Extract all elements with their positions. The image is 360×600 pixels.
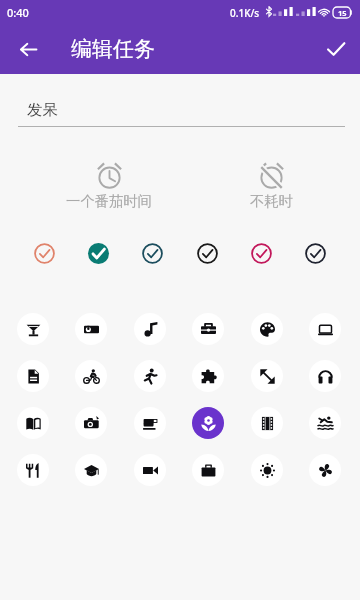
button[interactable]: Colour 5 [245, 237, 277, 269]
button[interactable]: Colour 2 [82, 237, 114, 269]
button[interactable]: swim [309, 407, 341, 439]
button[interactable]: Colour 4 [191, 237, 223, 269]
button[interactable]: Colour 6 [299, 237, 331, 269]
staticText: 0.1K/s [230, 6, 260, 20]
button[interactable]: music [134, 313, 166, 345]
button[interactable]: Colour 3 [136, 237, 168, 269]
button[interactable]: fan [309, 454, 341, 486]
button[interactable]: school [75, 454, 107, 486]
button[interactable]: sun [251, 454, 283, 486]
button[interactable]: laptop [309, 313, 341, 345]
button[interactable]: camera [75, 407, 107, 439]
button[interactable]: coffee [134, 407, 166, 439]
button[interactable]: Back [11, 32, 45, 66]
button[interactable]: puzzle [192, 360, 224, 392]
button[interactable]: headphones [309, 360, 341, 392]
button[interactable]: cocktail [17, 313, 49, 345]
button[interactable]: Save [319, 32, 353, 66]
button[interactable]: bag [192, 454, 224, 486]
staticText: 不耗时 [250, 192, 293, 210]
staticText: 一个番茄时间 [66, 192, 152, 210]
button[interactable]: money [75, 313, 107, 345]
button[interactable]: video [134, 454, 166, 486]
button[interactable]: film [251, 407, 283, 439]
button[interactable]: bike [75, 360, 107, 392]
staticText: 发呆 [27, 100, 58, 120]
staticText: 编辑任务 [71, 36, 155, 62]
button[interactable]: palette [251, 313, 283, 345]
button[interactable]: 一个番茄时间 [49, 159, 169, 213]
button[interactable]: flower [192, 407, 224, 439]
button[interactable]: food [17, 454, 49, 486]
button[interactable]: 不耗时 [211, 159, 331, 213]
button[interactable]: Colour 1 [28, 237, 60, 269]
button[interactable]: expand [251, 360, 283, 392]
staticText: 15 [338, 8, 347, 18]
button[interactable]: book [17, 407, 49, 439]
button[interactable]: doc [17, 360, 49, 392]
button[interactable]: briefcase [192, 313, 224, 345]
staticText: 0:40 [7, 5, 29, 20]
button[interactable]: run [134, 360, 166, 392]
